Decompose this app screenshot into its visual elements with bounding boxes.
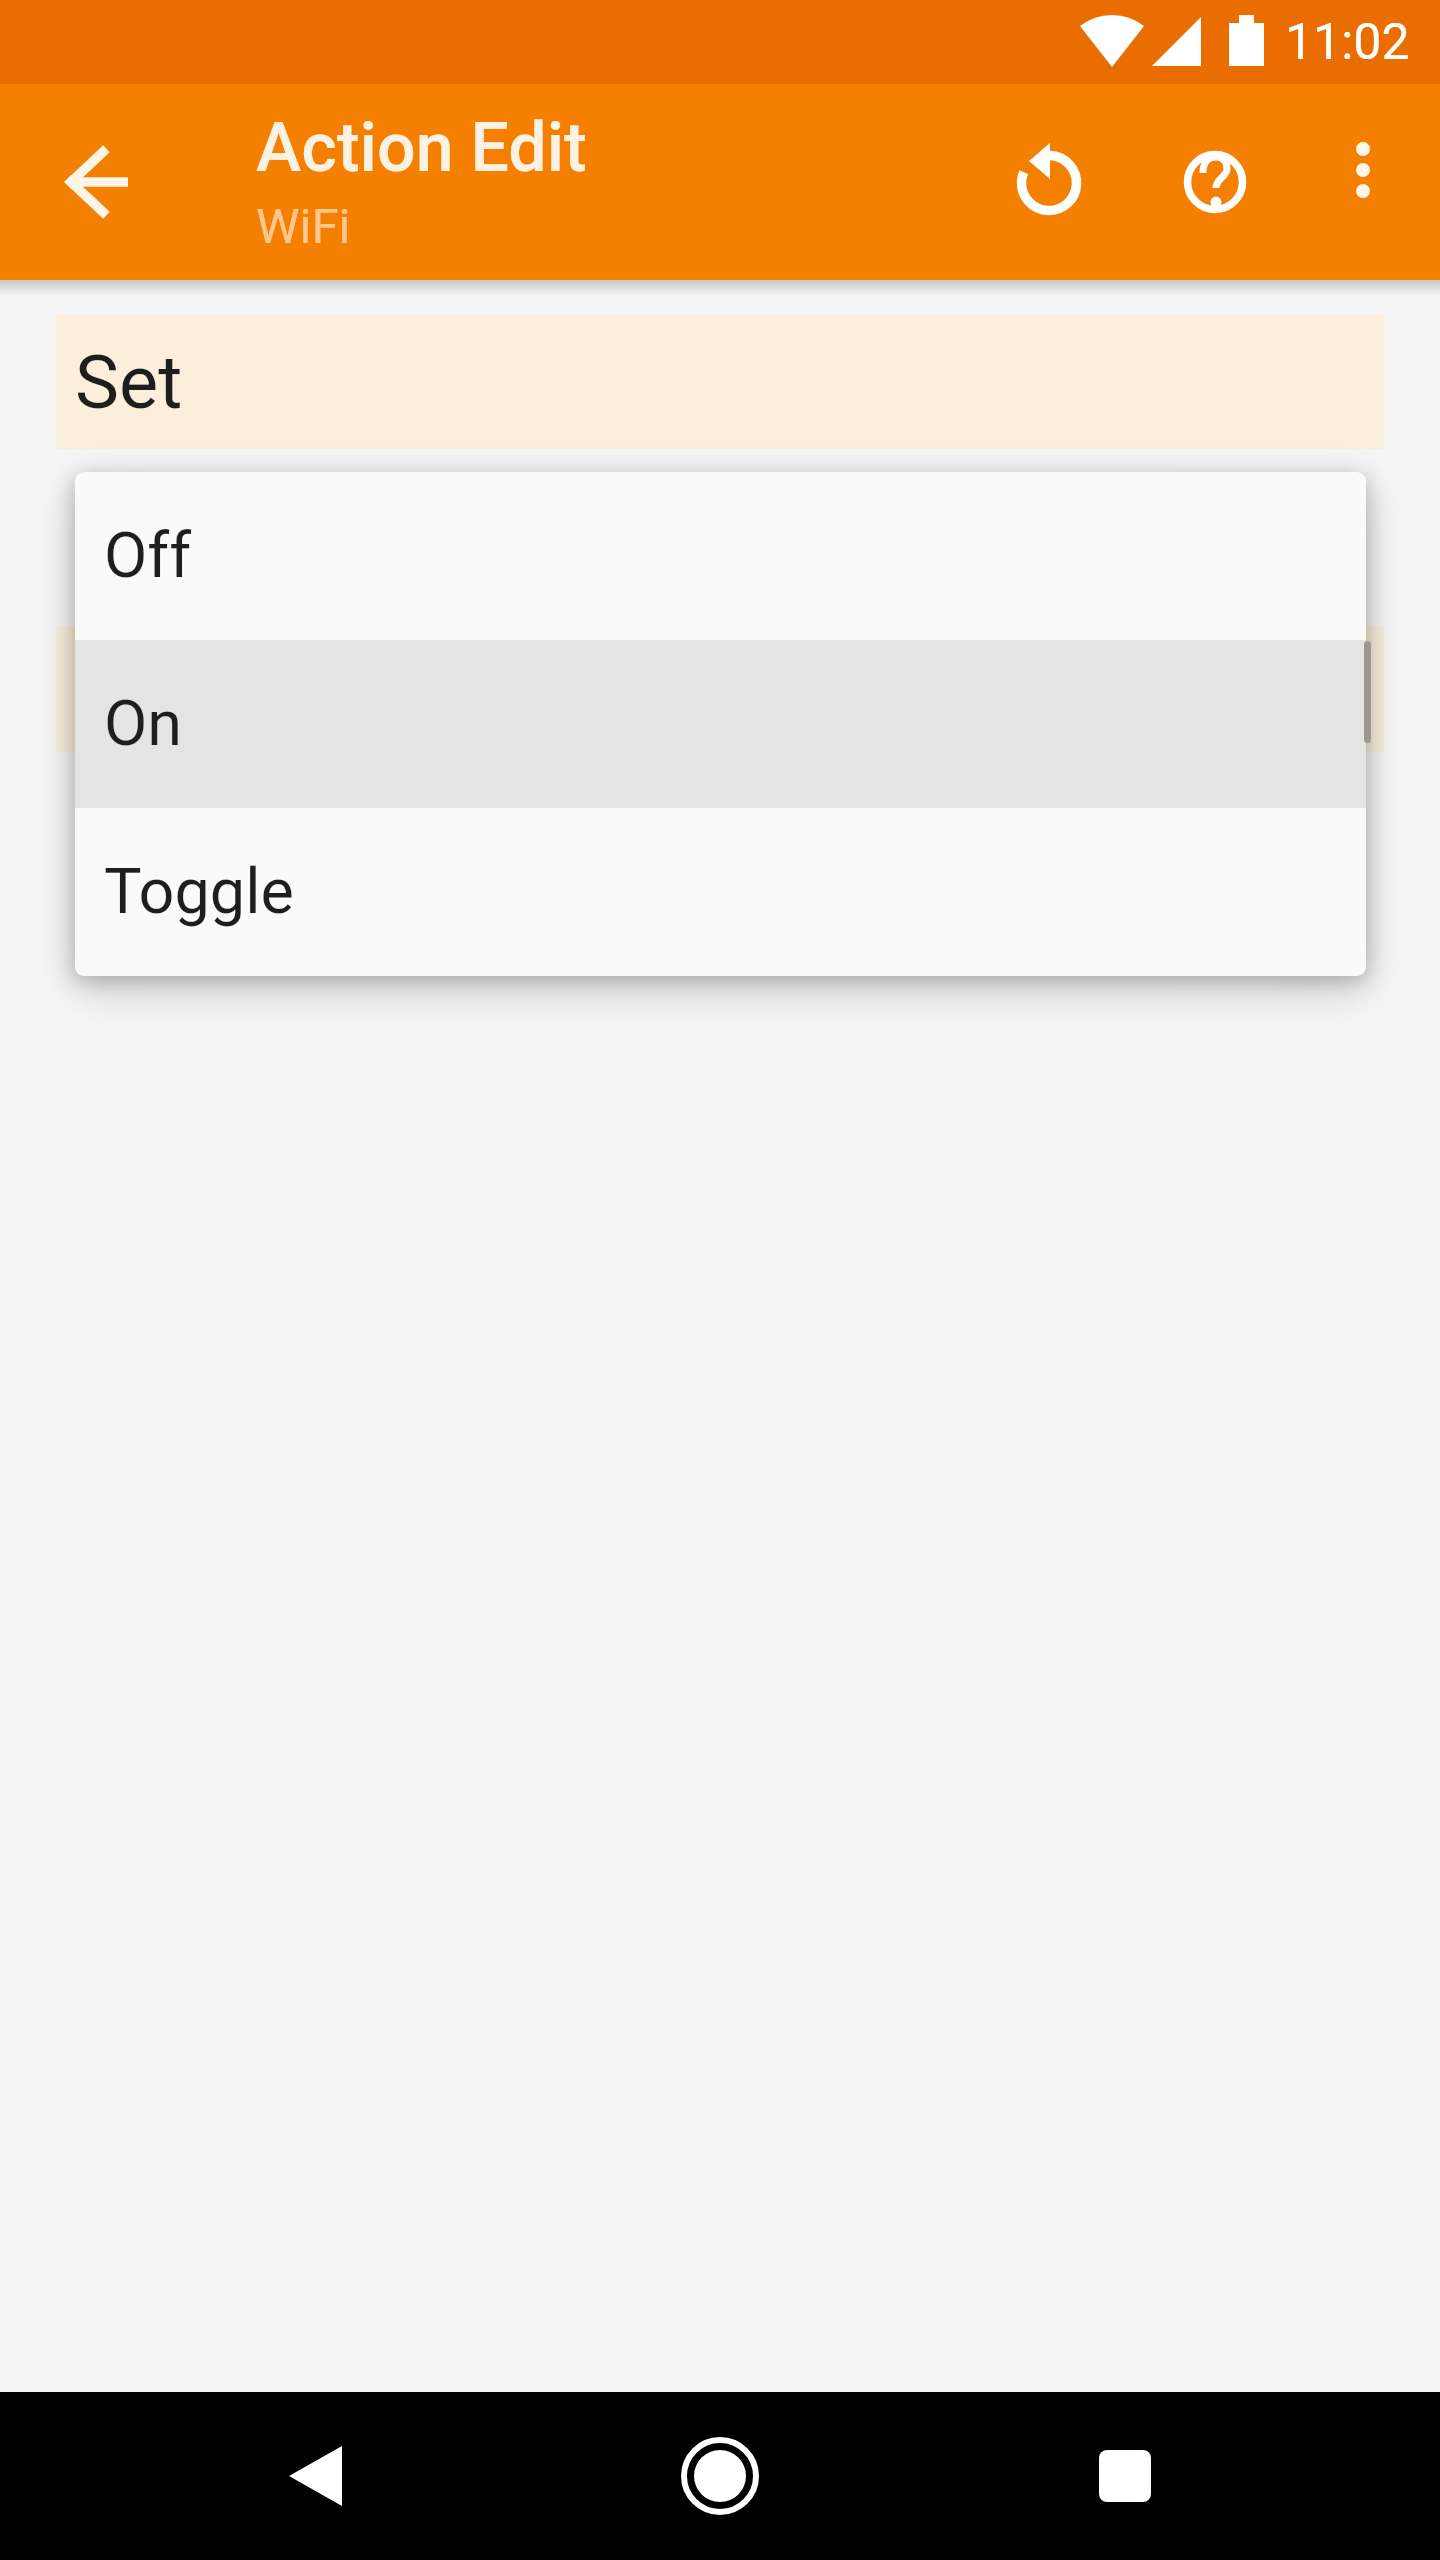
button[interactable] [990, 2392, 1260, 2560]
staticText: On [104, 687, 183, 761]
staticText: 11:02 [1285, 13, 1410, 72]
button[interactable] [180, 2392, 450, 2560]
button[interactable]: Off [75, 472, 1366, 640]
button[interactable] [984, 115, 1114, 245]
staticText: Action Edit [256, 108, 587, 188]
staticText: Set [75, 339, 183, 426]
button[interactable]: On [75, 640, 1366, 808]
button[interactable]: Toggle [75, 808, 1366, 976]
button[interactable] [1150, 115, 1280, 245]
staticText: Toggle [104, 855, 294, 929]
button[interactable] [1308, 115, 1418, 225]
staticText: WiFi [256, 198, 351, 255]
staticText: Off [104, 519, 192, 593]
button[interactable] [585, 2392, 855, 2560]
button[interactable] [30, 112, 170, 252]
